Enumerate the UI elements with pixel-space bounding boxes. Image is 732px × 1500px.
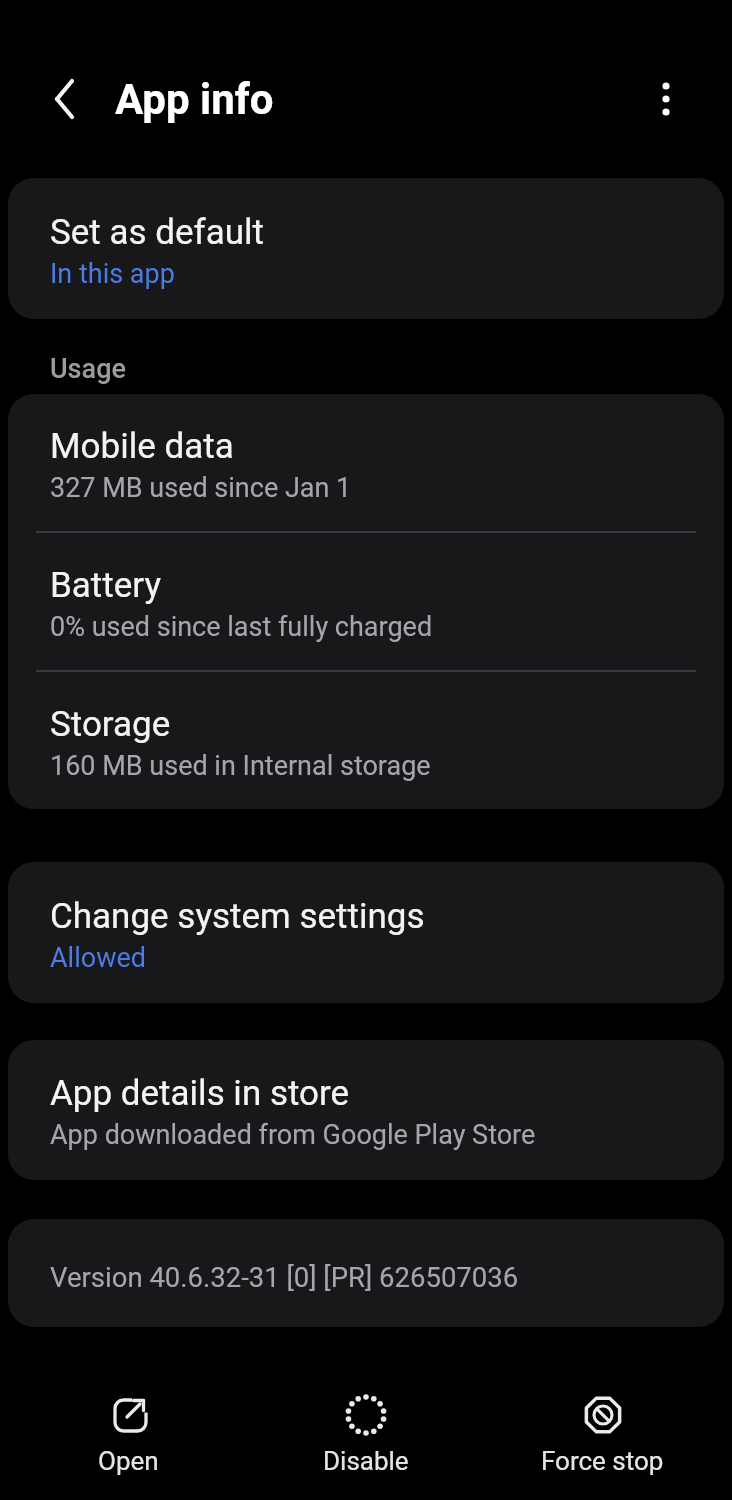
button[interactable]: Storage xyxy=(8,672,724,809)
staticText: Version 40.6.32-31 [0] [PR] 626507036 xyxy=(50,1261,519,1293)
staticText: Force stop xyxy=(541,1446,664,1476)
button[interactable]: Mobile data xyxy=(8,394,724,531)
staticText: App downloaded from Google Play Store xyxy=(50,1119,536,1151)
staticText: In this app xyxy=(50,258,175,290)
button[interactable]: Force stop xyxy=(484,1393,721,1476)
button[interactable]: Disable xyxy=(247,1393,484,1476)
staticText: App info xyxy=(115,75,274,124)
button[interactable] xyxy=(642,75,690,123)
staticText: App details in store xyxy=(50,1073,350,1114)
button[interactable] xyxy=(41,75,89,123)
staticText: Usage xyxy=(50,353,126,385)
button[interactable]: Battery xyxy=(8,533,724,670)
staticText: 160 MB used in Internal storage xyxy=(50,750,431,782)
staticText: Allowed xyxy=(50,942,146,974)
staticText: Storage xyxy=(50,704,171,745)
staticText: Mobile data xyxy=(50,426,234,467)
staticText: Change system settings xyxy=(50,896,425,937)
staticText: 327 MB used since Jan 1 xyxy=(50,472,352,504)
staticText: Open xyxy=(98,1446,159,1476)
button[interactable]: App details in store xyxy=(8,1040,724,1180)
staticText: Set as default xyxy=(50,212,265,253)
staticText: 0% used since last fully charged xyxy=(50,611,433,643)
staticText: Battery xyxy=(50,565,162,606)
button[interactable]: Change system settings xyxy=(8,862,724,1003)
button[interactable]: Open xyxy=(10,1393,247,1476)
button[interactable]: Set as default xyxy=(8,178,724,319)
staticText: Disable xyxy=(323,1446,409,1476)
